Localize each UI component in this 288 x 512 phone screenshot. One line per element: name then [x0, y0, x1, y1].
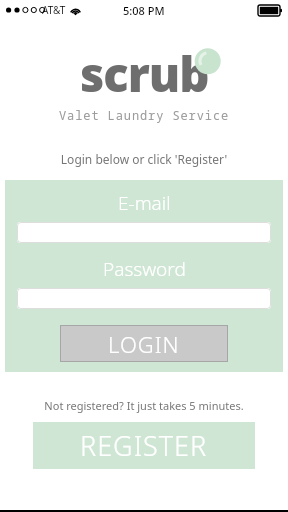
staticText: AT&T — [42, 3, 66, 17]
staticText: LOGIN — [108, 329, 180, 359]
staticText: Not registered? It just takes 5 minutes. — [0, 398, 288, 413]
button[interactable]: REGISTER — [33, 422, 255, 469]
staticText: REGISTER — [80, 427, 208, 464]
staticText: Login below or click 'Register' — [0, 151, 288, 167]
staticText: Valet Laundry Service — [59, 107, 230, 123]
button[interactable]: Text input — [17, 288, 271, 309]
staticText: E-mail — [118, 190, 171, 216]
button[interactable]: LOGIN — [60, 325, 228, 362]
staticText: 5:08 PM — [123, 3, 165, 18]
button[interactable]: Text input — [17, 222, 271, 243]
staticText: Password — [103, 256, 186, 282]
staticText: scrub — [80, 42, 209, 106]
